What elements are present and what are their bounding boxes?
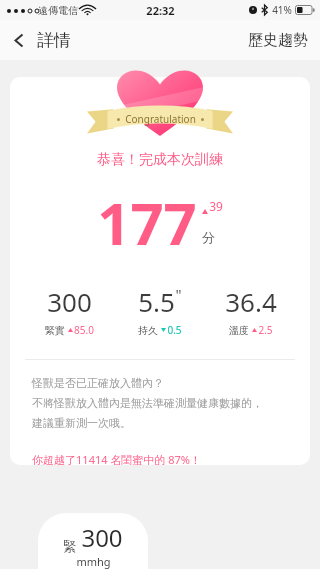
staticText: 不將怪獸放入體內是無法準確測量健康數據的， [32, 396, 263, 410]
staticText: mmhg [76, 554, 111, 569]
staticText: 0.5 [167, 323, 182, 337]
button[interactable]: 5.5 [114, 284, 205, 337]
staticText: 溫度 [229, 324, 249, 337]
staticText: 恭喜！完成本次訓練 [97, 151, 223, 169]
button[interactable]: 36.4 [205, 284, 296, 337]
staticText: 22:32 [146, 3, 175, 18]
staticText: 300 [47, 284, 92, 319]
button[interactable]: 300 [24, 284, 114, 337]
staticText: 緊 [63, 538, 76, 554]
staticText: 持久 [138, 324, 158, 337]
button[interactable]: Back [0, 22, 81, 59]
staticText: 41% [272, 3, 292, 17]
staticText: 5.5 [138, 284, 175, 319]
staticText: Congratulation [125, 112, 196, 126]
staticText: 你超越了11414 名閨蜜中的 87%！ [32, 452, 201, 465]
staticText: 36.4 [225, 284, 277, 319]
staticText: 300 [81, 521, 123, 554]
staticText: 分 [202, 229, 215, 245]
staticText: 85.0 [74, 323, 94, 337]
staticText: 緊實 [45, 324, 65, 337]
staticText: 詳情 [37, 30, 71, 51]
staticText: 2.5 [258, 323, 273, 337]
other: Back [14, 32, 24, 49]
staticText: 建議重新測一次哦。 [32, 416, 131, 430]
button[interactable]: 緊 [38, 513, 148, 569]
staticText: 歷史趨勢 [248, 31, 308, 50]
staticText: " [175, 284, 182, 304]
staticText: 39 [209, 198, 223, 214]
button[interactable]: 歷史趨勢 [236, 23, 320, 58]
staticText: 遠傳電信 [38, 4, 78, 17]
staticText: 177 [97, 183, 197, 262]
staticText: 怪獸是否已正確放入體內？ [32, 376, 164, 390]
